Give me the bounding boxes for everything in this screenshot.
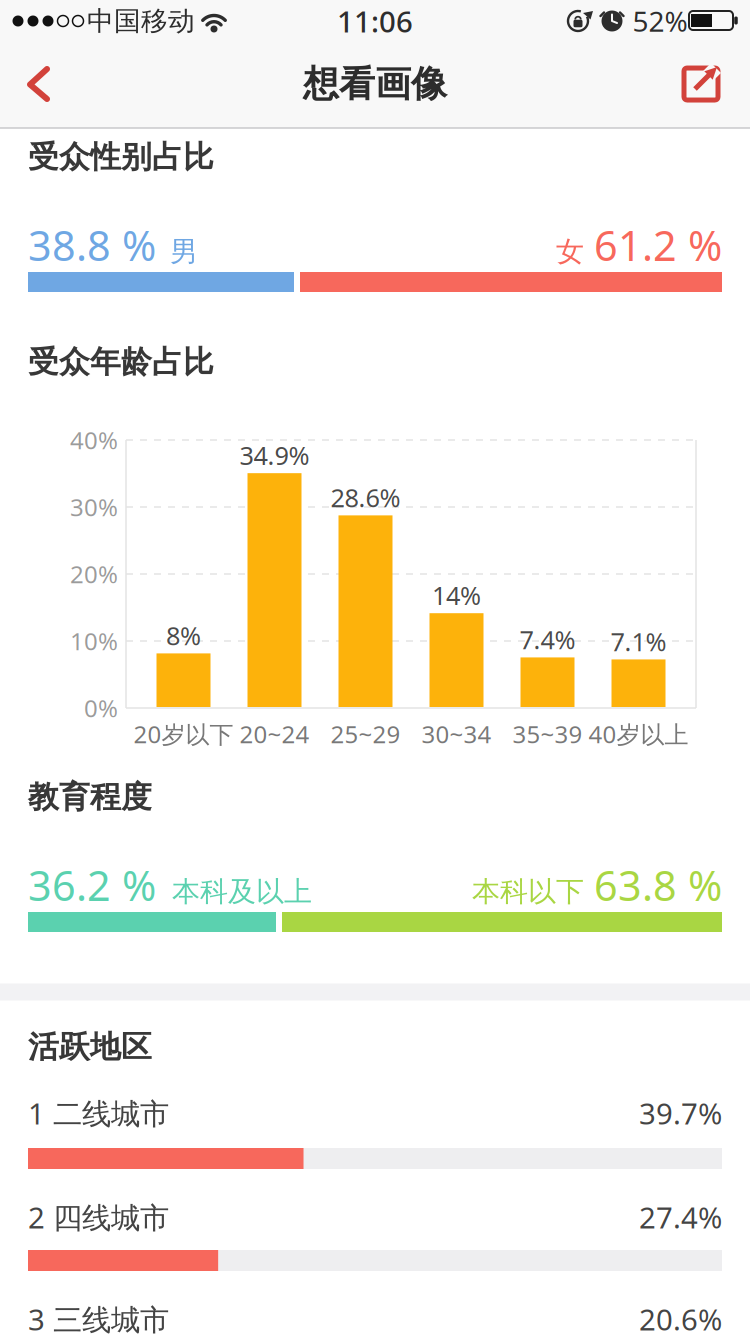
staticText: 本科及以上 xyxy=(172,874,312,909)
staticText: 受众年龄占比 xyxy=(28,343,214,381)
staticText: 38.8 % xyxy=(28,218,156,272)
staticText: 7.4% xyxy=(519,623,575,656)
staticText: 30% xyxy=(70,491,118,523)
staticText: 活跃地区 xyxy=(28,1028,152,1066)
staticText: 27.4% xyxy=(639,1197,722,1236)
staticText: 35~39 xyxy=(512,718,582,750)
staticText: 61.2 % xyxy=(594,218,722,272)
staticText: 25~29 xyxy=(330,718,400,750)
staticText: 本科以下 xyxy=(472,874,584,909)
staticText: 女 xyxy=(556,234,584,269)
staticText: 8% xyxy=(166,619,201,652)
staticText: 30~34 xyxy=(421,718,491,750)
staticText: 想看画像 xyxy=(303,62,447,106)
staticText: 40岁以上 xyxy=(588,718,688,750)
staticText: 1 二线城市 xyxy=(28,1093,169,1132)
staticText: 63.8 % xyxy=(594,858,722,912)
staticText: 11:06 xyxy=(337,1,413,40)
staticText: 2 四线城市 xyxy=(28,1197,169,1236)
staticText: 20.6% xyxy=(639,1299,722,1334)
staticText: 28.6% xyxy=(330,481,400,514)
staticText: 男 xyxy=(170,234,198,269)
button[interactable]: Share xyxy=(665,48,737,120)
staticText: 20岁以下 xyxy=(133,718,233,750)
staticText: 3 三线城市 xyxy=(28,1299,169,1334)
staticText: 0% xyxy=(84,692,118,724)
staticText: 20% xyxy=(70,558,118,590)
staticText: 39.7% xyxy=(639,1093,722,1132)
staticText: 34.9% xyxy=(239,438,309,472)
staticText: 教育程度 xyxy=(28,778,152,816)
button[interactable]: Back xyxy=(3,48,75,120)
staticText: 10% xyxy=(70,625,118,657)
staticText: 40% xyxy=(70,424,118,456)
staticText: 52% xyxy=(632,2,687,40)
staticText: 36.2 % xyxy=(28,858,156,912)
staticText: 7.1% xyxy=(610,625,666,658)
staticText: 中国移动 xyxy=(87,5,195,37)
staticText: 受众性别占比 xyxy=(28,138,214,176)
staticText: 20~24 xyxy=(239,718,309,750)
staticText: 14% xyxy=(432,578,481,612)
